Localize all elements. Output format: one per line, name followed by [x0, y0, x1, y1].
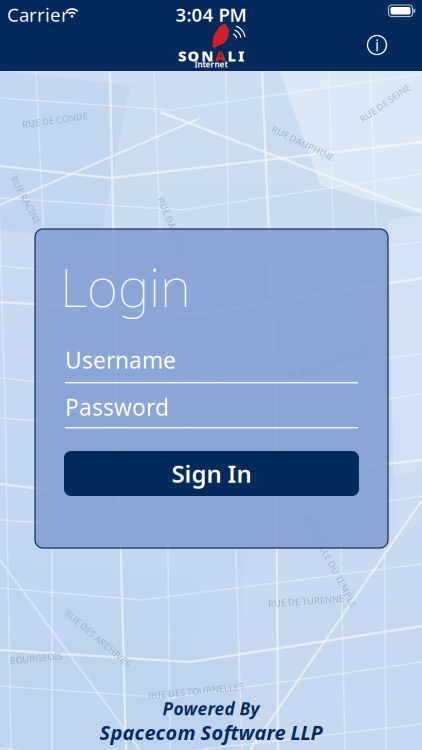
staticText: Carrier — [7, 2, 69, 27]
staticText: RUE DE TURENNE — [268, 595, 344, 607]
staticText: S — [178, 46, 186, 65]
staticText: Username — [65, 345, 176, 375]
staticText: RUE RACINE — [0, 194, 52, 206]
staticText: i — [375, 34, 379, 56]
staticText: RUE DE CONDE — [22, 114, 88, 126]
staticText: RUE DE SEINE — [355, 97, 414, 109]
button[interactable]: Info — [366, 34, 388, 56]
staticText: Sign In — [171, 458, 251, 489]
staticText: BOURGEOIS — [9, 652, 62, 664]
staticText: Login — [60, 251, 191, 322]
staticText: RUE VIEILLE DU TEMPLE — [277, 554, 382, 566]
button[interactable]: Sign In — [64, 451, 359, 496]
staticText: RUE DAUPHINE — [269, 137, 337, 149]
staticText: RUE DES TOURNELLES — [148, 685, 244, 697]
button[interactable]: Username — [65, 345, 358, 384]
staticText: L — [227, 46, 236, 65]
button[interactable]: Password — [65, 392, 358, 429]
staticText: RUE DANTON — [142, 219, 201, 231]
staticText: A — [215, 46, 226, 65]
staticText: RUE DES ARCHIVES — [56, 632, 139, 644]
staticText: N — [201, 46, 213, 65]
staticText: I — [238, 46, 244, 65]
staticText: Powered By — [162, 697, 259, 720]
staticText: Internet — [194, 59, 227, 70]
staticText: Password — [65, 392, 169, 422]
staticText: 3:04 PM — [175, 2, 246, 27]
staticText: O — [188, 46, 200, 65]
staticText: Spacecom Software LLP — [99, 719, 322, 746]
